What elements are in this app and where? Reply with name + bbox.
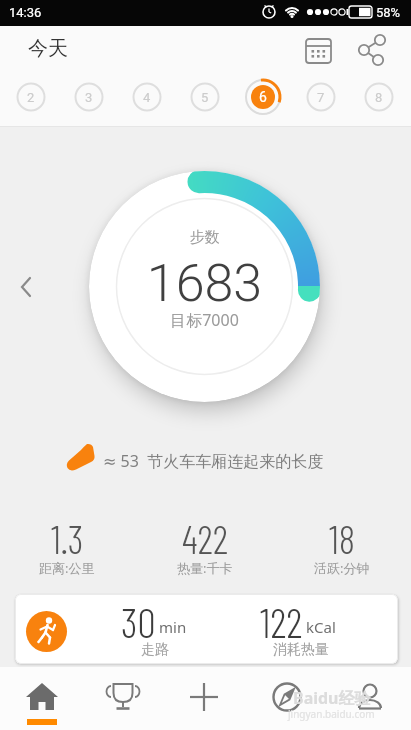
button[interactable] (179, 675, 229, 721)
staticText: 4 (143, 90, 151, 105)
staticText: 消耗热量 (273, 641, 329, 659)
button[interactable]: 30 (15, 594, 398, 664)
staticText: 30 (121, 597, 156, 646)
button[interactable] (262, 675, 312, 721)
button[interactable]: 5 (185, 77, 225, 117)
staticText: 步数 (89, 228, 320, 247)
staticText: 走路 (141, 641, 169, 659)
staticText: 58% (376, 5, 401, 20)
staticText: 18 (329, 515, 356, 562)
staticText: kCal (306, 617, 336, 637)
staticText: min (159, 617, 187, 637)
staticText: 活跃:分钟 (314, 559, 370, 577)
staticText: 今天 (28, 36, 68, 61)
button[interactable]: 6 (243, 77, 283, 117)
button[interactable] (98, 675, 148, 721)
button[interactable] (17, 675, 67, 727)
staticText: jingyan.baidu.com (288, 707, 375, 721)
staticText: 5 (201, 90, 209, 105)
button[interactable]: 2 (11, 77, 51, 117)
button[interactable] (352, 30, 392, 70)
staticText: 热量:千卡 (177, 559, 233, 577)
staticText: Baidu经验 (293, 687, 371, 709)
button[interactable] (345, 675, 395, 721)
staticText: 目标7000 (89, 309, 320, 331)
staticText: 1683 (89, 253, 320, 314)
staticText: 122 (260, 597, 303, 646)
staticText: 422 (182, 515, 229, 562)
staticText: 距离:公里 (39, 559, 95, 577)
staticText: 8 (375, 90, 383, 105)
staticText: 6 (259, 89, 267, 105)
staticText: 3 (85, 90, 93, 105)
button[interactable]: 3 (69, 77, 109, 117)
button[interactable] (298, 30, 338, 70)
button[interactable]: 8 (359, 77, 399, 117)
staticText: ≈ 53 节火车车厢连起来的长度 (103, 450, 324, 472)
staticText: 1.3 (51, 515, 84, 562)
staticText: 7 (317, 90, 325, 105)
button[interactable]: 4 (127, 77, 167, 117)
staticText: 2 (27, 90, 35, 105)
staticText: 14:36 (9, 5, 42, 20)
button[interactable]: 7 (301, 77, 341, 117)
